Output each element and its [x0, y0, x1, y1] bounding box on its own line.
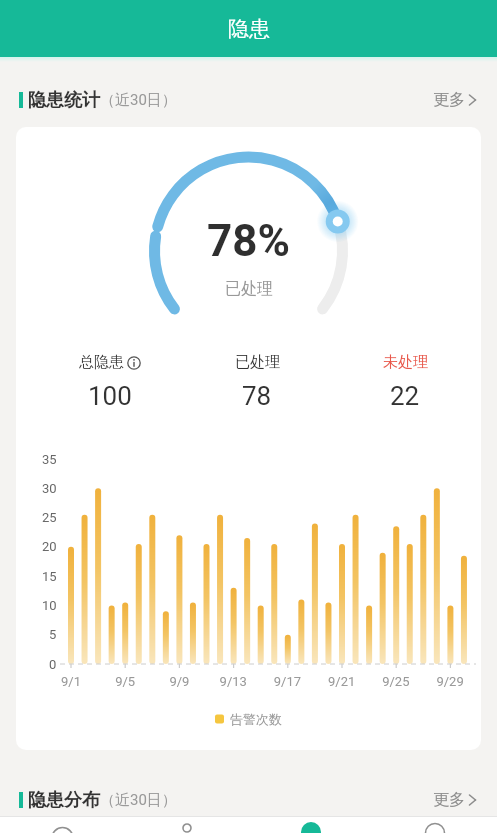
button[interactable]	[249, 817, 373, 833]
button[interactable]: 更多	[433, 790, 477, 810]
staticText: 总隐患	[79, 353, 124, 372]
staticText: 隐患分布	[28, 789, 100, 812]
staticText: 更多	[433, 90, 465, 110]
staticText: 78%	[207, 215, 290, 267]
staticText: 78	[242, 381, 272, 411]
staticText: （近30日）	[100, 791, 177, 810]
staticText: 22	[390, 381, 420, 411]
staticText: 隐患	[228, 16, 270, 42]
button[interactable]	[125, 817, 249, 833]
staticText: 已处理	[225, 279, 273, 299]
staticText: 未处理	[383, 353, 428, 372]
button[interactable]	[373, 817, 497, 833]
staticText: 隐患统计	[28, 89, 100, 112]
button[interactable]	[0, 817, 125, 833]
staticText: （近30日）	[100, 91, 177, 110]
staticText: 100	[88, 381, 132, 411]
button[interactable]: 更多	[433, 90, 477, 110]
staticText: 已处理	[235, 353, 280, 372]
staticText: 更多	[433, 790, 465, 810]
